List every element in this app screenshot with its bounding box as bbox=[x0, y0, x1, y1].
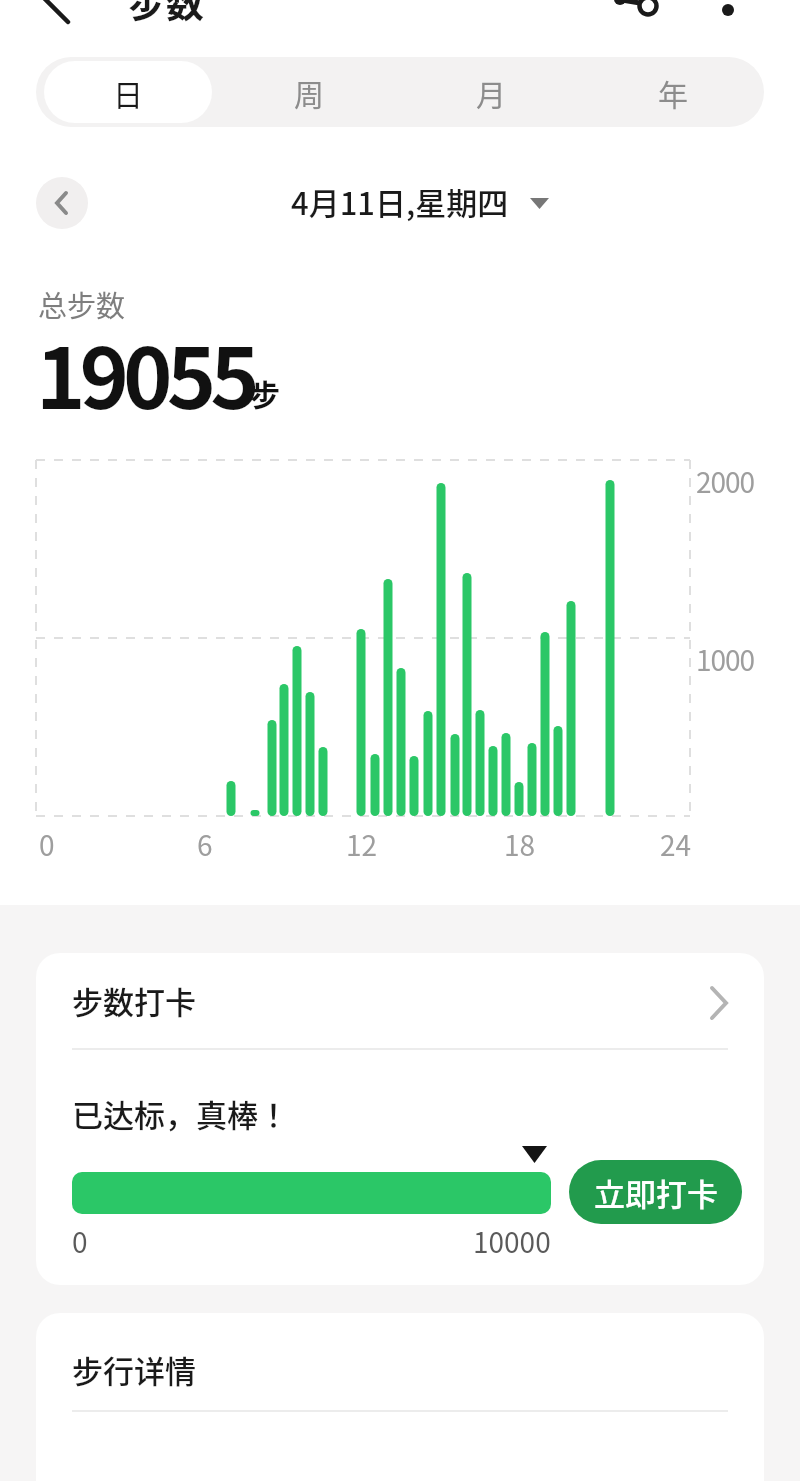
staticText: 2000 bbox=[696, 461, 755, 502]
staticText: 周 bbox=[294, 71, 324, 114]
staticText: 0 bbox=[72, 1221, 88, 1262]
staticText: 12 bbox=[346, 824, 378, 865]
staticText: 6 bbox=[197, 824, 213, 865]
staticText: 24 bbox=[660, 824, 692, 865]
staticText: 步数打卡 bbox=[72, 978, 196, 1023]
staticText: 步 bbox=[250, 371, 280, 414]
staticText: 步行详情 bbox=[72, 1347, 196, 1392]
button[interactable]: 步数打卡 bbox=[36, 953, 764, 1048]
button[interactable] bbox=[600, 0, 670, 28]
button[interactable]: 年 bbox=[582, 57, 764, 127]
button[interactable] bbox=[20, 0, 80, 28]
button[interactable]: 日 bbox=[44, 61, 212, 123]
staticText: 总步数 bbox=[38, 283, 126, 325]
staticText: 月 bbox=[476, 71, 506, 114]
staticText: 19055 bbox=[36, 312, 254, 434]
staticText: 0 bbox=[39, 824, 55, 865]
staticText: 已达标，真棒！ bbox=[72, 1091, 289, 1136]
staticText: 1000 bbox=[696, 639, 755, 680]
button[interactable] bbox=[36, 177, 88, 229]
button[interactable] bbox=[700, 0, 760, 28]
staticText: 18 bbox=[504, 824, 536, 865]
staticText: 年 bbox=[658, 71, 688, 114]
button[interactable]: 月 bbox=[400, 57, 582, 127]
staticText: 4月11日,星期四 bbox=[291, 179, 509, 224]
staticText: 步数 bbox=[128, 0, 205, 28]
button[interactable]: 周 bbox=[218, 57, 400, 127]
staticText: 日 bbox=[113, 71, 143, 114]
staticText: 10000 bbox=[473, 1221, 551, 1262]
staticText: 立即打卡 bbox=[594, 1170, 718, 1215]
button[interactable]: 4月11日,星期四 bbox=[0, 179, 800, 224]
button[interactable]: 步行详情 bbox=[36, 1313, 764, 1410]
button[interactable]: 立即打卡 bbox=[569, 1160, 742, 1224]
